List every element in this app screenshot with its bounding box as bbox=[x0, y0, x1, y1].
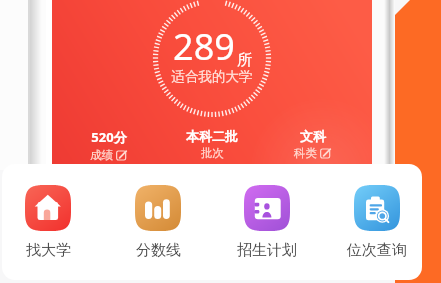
staticText: 适合我的大学 bbox=[112, 68, 312, 85]
staticText: 本科二批 bbox=[186, 128, 238, 144]
staticText: 招生计划 bbox=[237, 241, 297, 260]
staticText: 文科 bbox=[300, 128, 326, 144]
button[interactable]: 520分 bbox=[58, 128, 158, 166]
staticText: 成绩 bbox=[90, 148, 113, 162]
staticText: 位次查询 bbox=[347, 241, 407, 260]
button[interactable]: 找大学 bbox=[2, 173, 100, 265]
staticText: 找大学 bbox=[26, 241, 71, 260]
staticText: 科类 bbox=[294, 146, 317, 160]
staticText: 所 bbox=[237, 50, 253, 70]
staticText: 289 bbox=[173, 22, 235, 71]
button[interactable]: 分数线 bbox=[106, 173, 210, 265]
staticText: 520分 bbox=[91, 128, 127, 146]
staticText: 批次 bbox=[201, 146, 224, 160]
button[interactable]: 位次查询 bbox=[325, 173, 422, 265]
staticText: 分数线 bbox=[136, 241, 181, 260]
button[interactable]: 文科 bbox=[262, 128, 362, 166]
button[interactable]: 本科二批 bbox=[162, 128, 262, 166]
button[interactable]: 招生计划 bbox=[215, 173, 319, 265]
